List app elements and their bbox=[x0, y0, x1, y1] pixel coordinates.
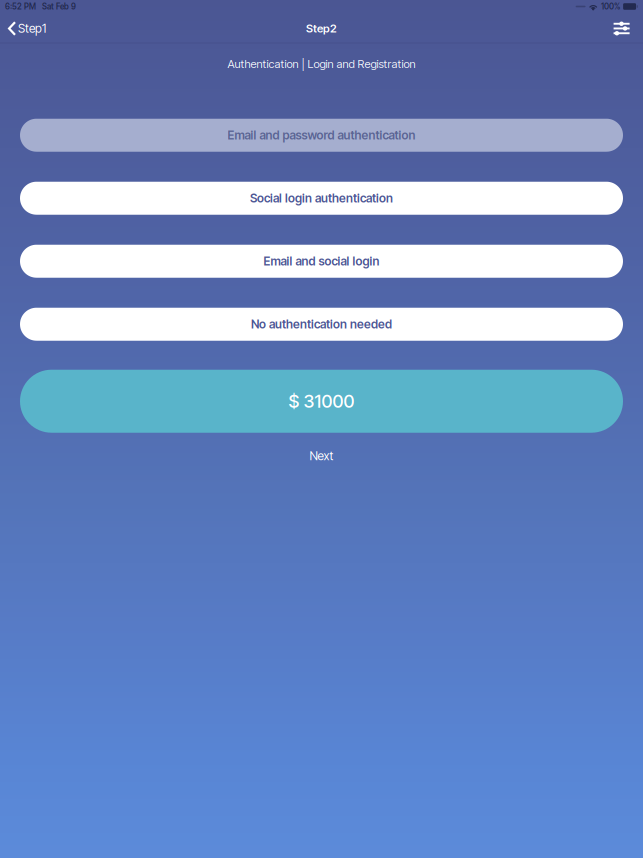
button[interactable]: Social login authentication bbox=[20, 182, 623, 215]
staticText: 6:52 PM bbox=[5, 2, 36, 11]
staticText: Step1 bbox=[18, 21, 46, 36]
staticText: 100% bbox=[601, 2, 620, 11]
staticText: Authentication | Login and Registration bbox=[227, 57, 415, 71]
staticText: Email and social login bbox=[263, 254, 379, 268]
staticText: Next bbox=[309, 449, 333, 463]
button[interactable]: Email and social login bbox=[20, 245, 623, 278]
staticText: Sat Feb 9 bbox=[42, 2, 76, 11]
staticText: $ 31000 bbox=[288, 390, 354, 412]
button[interactable]: Filters bbox=[601, 13, 643, 44]
staticText: Email and password authentication bbox=[227, 128, 415, 142]
button[interactable]: No authentication needed bbox=[20, 308, 623, 341]
button[interactable]: Email and password authentication bbox=[20, 119, 623, 152]
button[interactable]: Step1 bbox=[0, 13, 56, 44]
staticText: No authentication needed bbox=[251, 317, 392, 331]
staticText: Step2 bbox=[306, 22, 337, 35]
staticText: Social login authentication bbox=[250, 191, 393, 205]
button[interactable]: $ 31000 bbox=[20, 370, 623, 433]
button[interactable]: Next bbox=[299, 441, 343, 471]
